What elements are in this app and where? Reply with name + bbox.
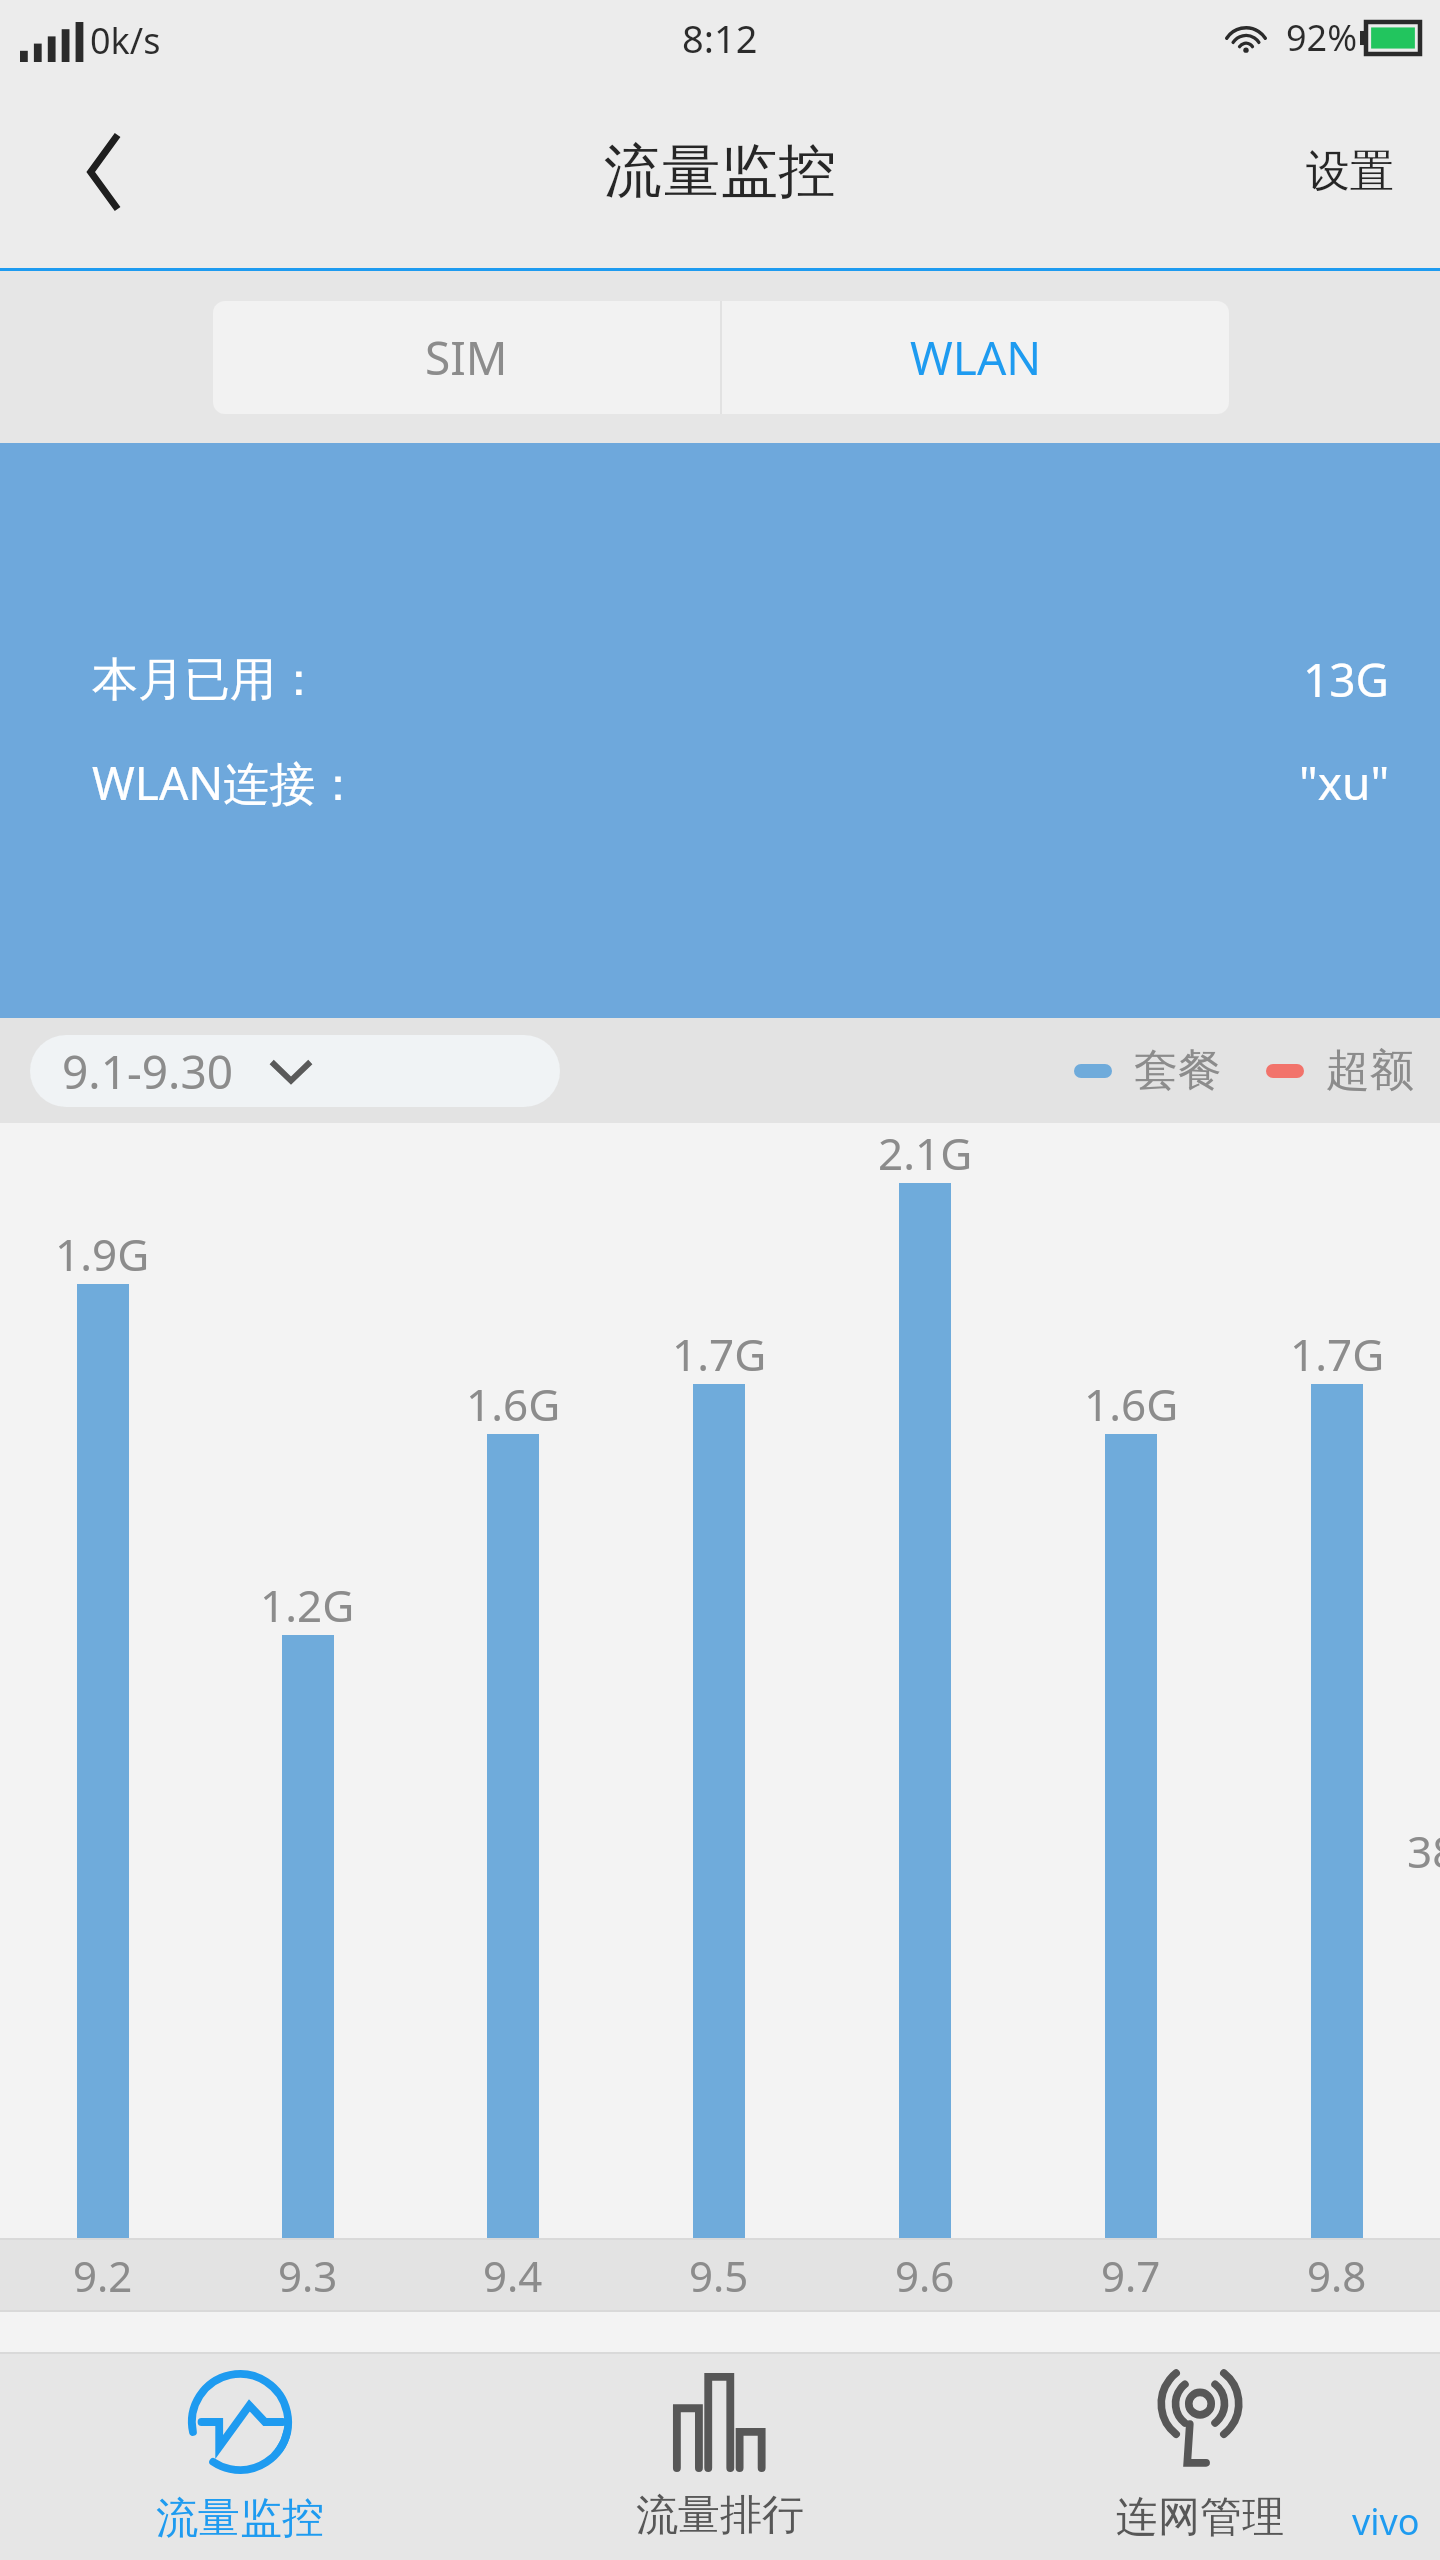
- staticText: 13G: [1303, 648, 1390, 711]
- button[interactable]: 9.1-9.30: [30, 1035, 560, 1107]
- staticText: 2.1G: [878, 1123, 973, 1183]
- staticText: 9.5: [689, 2247, 749, 2304]
- button[interactable]: 连网管理: [960, 2354, 1440, 2560]
- button[interactable]: 流量监控: [0, 2354, 480, 2560]
- staticText: 1.9G: [55, 1224, 150, 1284]
- staticText: 9.8: [1307, 2247, 1367, 2304]
- button[interactable]: Back: [0, 75, 210, 268]
- button[interactable]: 设置: [1260, 75, 1440, 268]
- staticText: 1.6G: [466, 1374, 561, 1434]
- staticText: 1.6G: [1084, 1374, 1179, 1434]
- button[interactable]: 流量排行: [480, 2354, 960, 2560]
- staticText: 9.7: [1101, 2247, 1161, 2304]
- staticText: 流量排行: [636, 2489, 804, 2542]
- staticText: 设置: [1306, 144, 1394, 199]
- staticText: 9.3: [278, 2247, 338, 2304]
- staticText: WLAN: [910, 326, 1042, 389]
- staticText: 92%: [1286, 13, 1358, 62]
- staticText: 9.1-9.30: [62, 1040, 234, 1103]
- staticText: 0k/s: [90, 16, 161, 65]
- staticText: 1.7G: [672, 1324, 767, 1384]
- staticText: 38: [1407, 1821, 1440, 1881]
- staticText: 1.7G: [1290, 1324, 1385, 1384]
- staticText: "xu": [1299, 751, 1390, 814]
- staticText: 1.2G: [260, 1575, 355, 1635]
- staticText: 套餐: [1134, 1043, 1222, 1098]
- staticText: 连网管理: [1116, 2491, 1284, 2544]
- button[interactable]: WLAN: [722, 301, 1229, 414]
- button[interactable]: SIM: [213, 301, 720, 414]
- staticText: 9.2: [73, 2247, 133, 2304]
- staticText: 8:12: [682, 12, 758, 64]
- staticText: vivo: [1352, 2497, 1420, 2546]
- staticText: 9.4: [483, 2247, 543, 2304]
- staticText: 流量监控: [604, 135, 836, 208]
- staticText: 9.6: [895, 2247, 955, 2304]
- staticText: 超额: [1326, 1043, 1414, 1098]
- staticText: SIM: [425, 326, 508, 389]
- staticText: 流量监控: [156, 2492, 324, 2545]
- staticText: WLAN连接：: [92, 751, 362, 814]
- staticText: 本月已用：: [92, 651, 322, 709]
